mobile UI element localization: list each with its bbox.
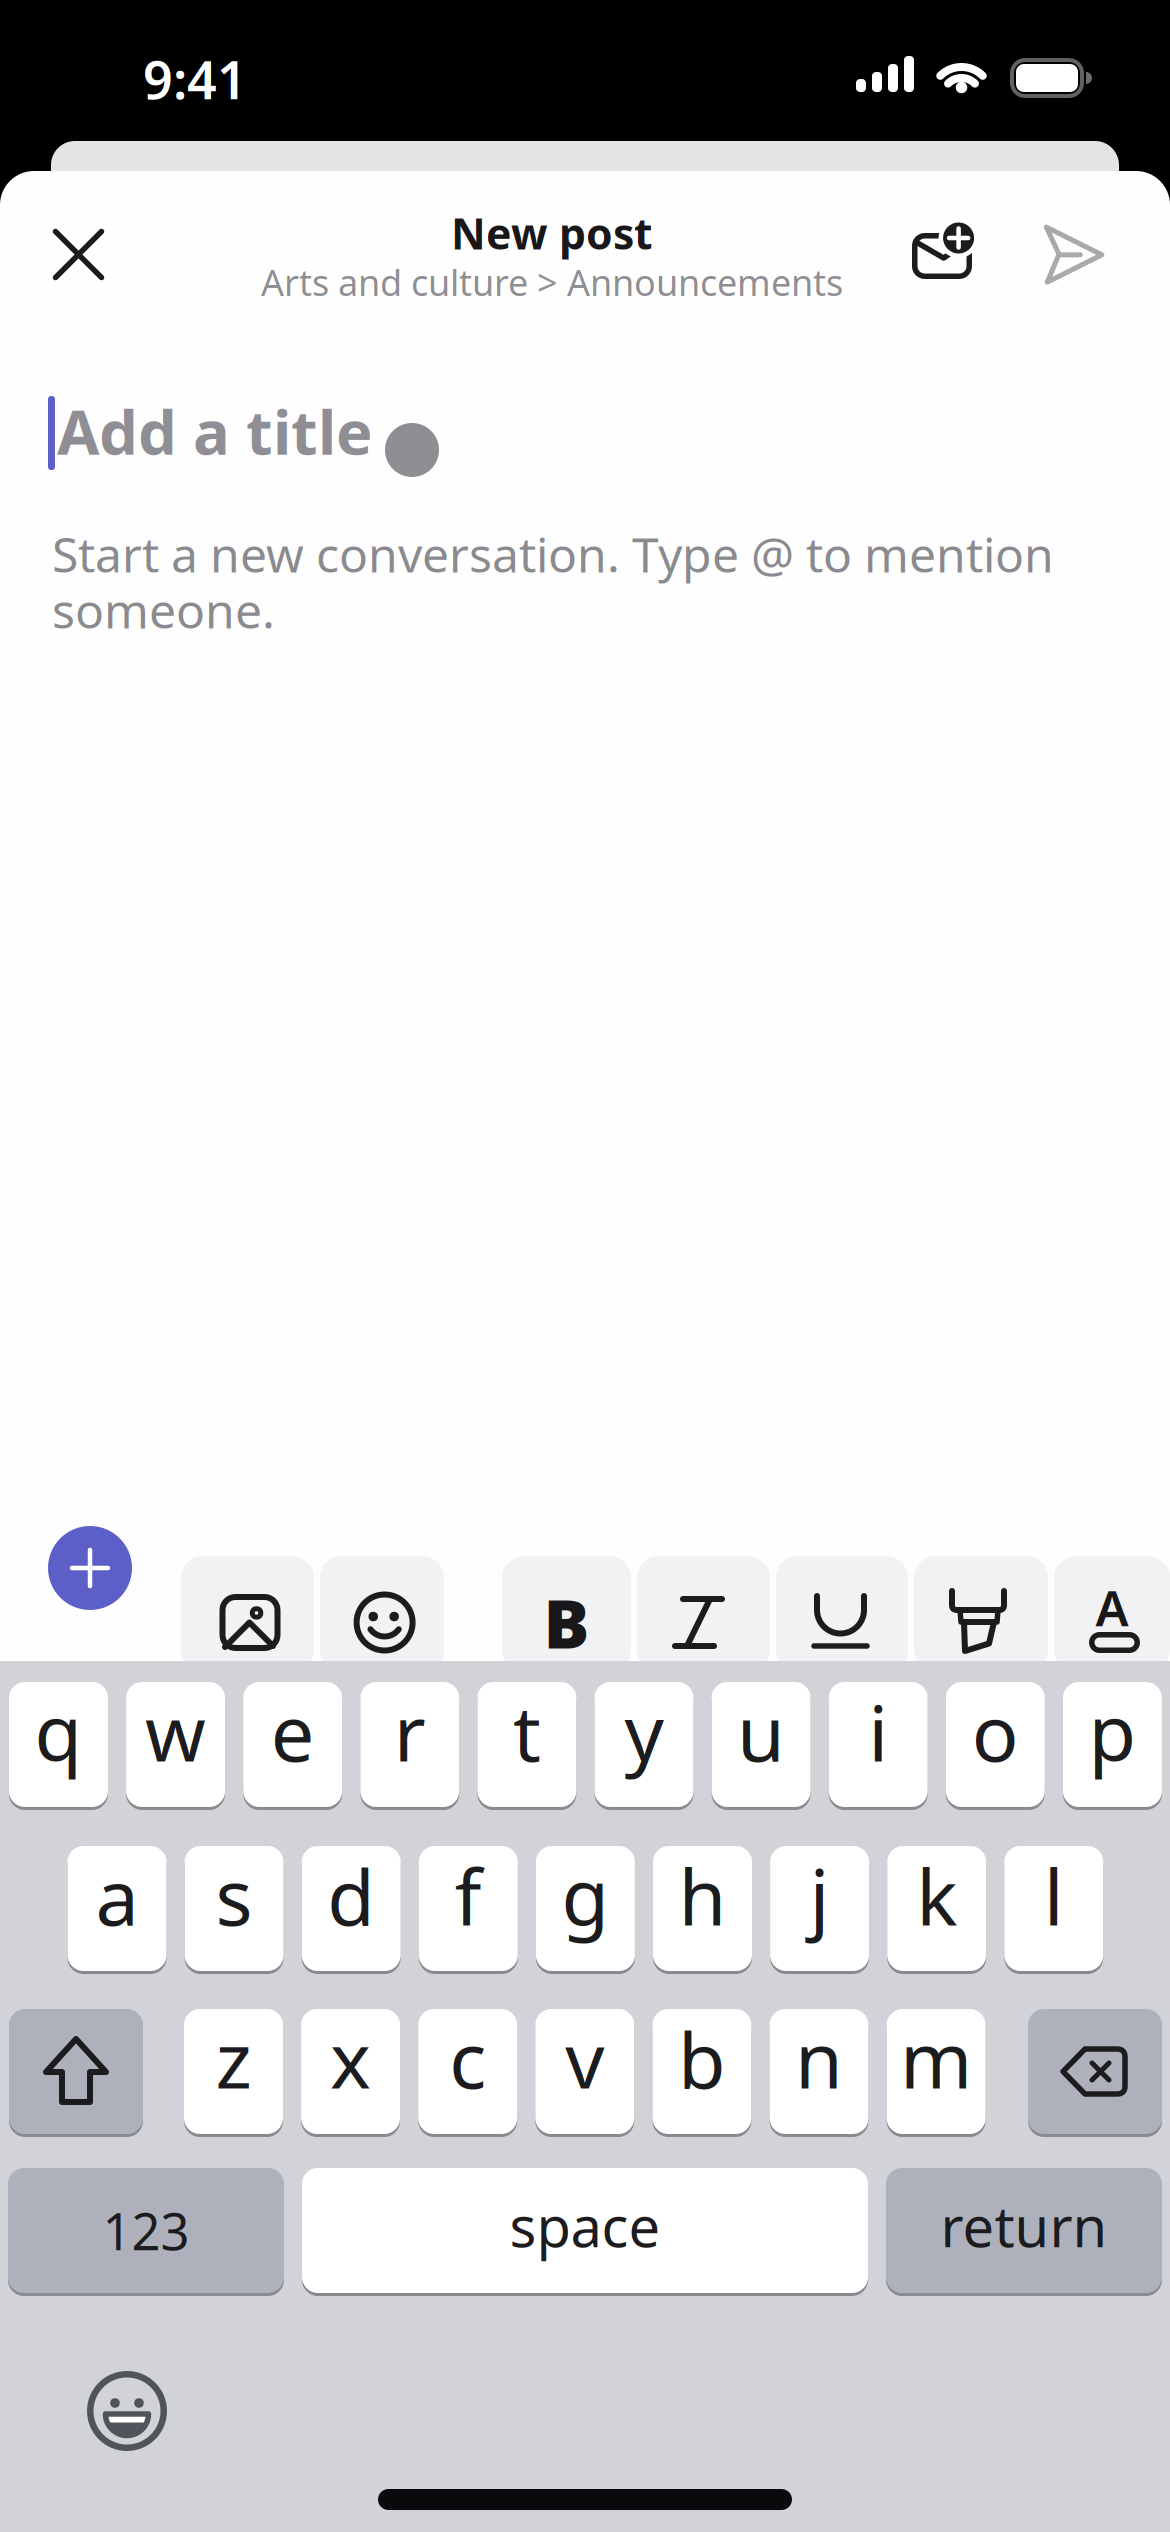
button[interactable] xyxy=(48,1526,132,1610)
staticText: l xyxy=(1044,1844,1064,1947)
staticText: q xyxy=(34,1680,82,1783)
staticText: Start a new conversation. Type @ to ment… xyxy=(52,522,1054,586)
button[interactable] xyxy=(914,1556,1048,1672)
button[interactable]: q xyxy=(9,1682,108,1807)
button[interactable]: m xyxy=(887,2009,986,2134)
button[interactable] xyxy=(637,1556,770,1672)
staticText: d xyxy=(327,1844,375,1947)
staticText: n xyxy=(795,2007,843,2110)
staticText: Add a title xyxy=(57,390,373,472)
button[interactable]: h xyxy=(653,1846,752,1971)
button[interactable]: d xyxy=(302,1846,401,1971)
staticText: New post xyxy=(451,205,653,261)
staticText: p xyxy=(1088,1680,1136,1783)
button[interactable] xyxy=(906,216,980,286)
staticText: 9:41 xyxy=(143,44,247,114)
button[interactable] xyxy=(1028,2009,1162,2134)
button[interactable]: g xyxy=(536,1846,635,1971)
button[interactable]: v xyxy=(535,2009,634,2134)
staticText: o xyxy=(972,1680,1019,1783)
button[interactable]: A xyxy=(1054,1556,1170,1672)
button[interactable]: x xyxy=(301,2009,400,2134)
staticText: t xyxy=(513,1680,541,1783)
button[interactable] xyxy=(46,222,110,286)
button[interactable]: y xyxy=(594,1682,693,1807)
button[interactable]: z xyxy=(184,2009,283,2134)
button[interactable]: e xyxy=(243,1682,342,1807)
staticText: z xyxy=(215,2007,251,2110)
button[interactable]: i xyxy=(829,1682,928,1807)
staticText: c xyxy=(449,2007,486,2110)
staticText: w xyxy=(145,1680,206,1783)
staticText: v xyxy=(565,2007,604,2110)
button[interactable]: a xyxy=(67,1846,166,1971)
button[interactable]: return xyxy=(886,2168,1162,2293)
button[interactable]: space xyxy=(302,2168,868,2293)
staticText: k xyxy=(916,1844,957,1947)
staticText: someone. xyxy=(52,578,275,642)
staticText: f xyxy=(455,1844,482,1947)
button[interactable] xyxy=(320,1556,444,1672)
staticText: g xyxy=(561,1844,609,1947)
staticText: return xyxy=(940,2188,1107,2263)
button[interactable] xyxy=(776,1556,908,1672)
button[interactable] xyxy=(1032,213,1116,297)
button[interactable]: b xyxy=(652,2009,751,2134)
staticText: Arts and culture > Announcements xyxy=(261,258,843,306)
button[interactable]: p xyxy=(1063,1682,1162,1807)
button[interactable]: t xyxy=(477,1682,576,1807)
button[interactable]: c xyxy=(418,2009,517,2134)
staticText: h xyxy=(678,1844,726,1947)
button[interactable]: u xyxy=(712,1682,811,1807)
staticText: B xyxy=(543,1577,589,1667)
button[interactable]: k xyxy=(887,1846,986,1971)
staticText: r xyxy=(394,1680,426,1783)
staticText: s xyxy=(216,1844,253,1947)
button[interactable]: r xyxy=(360,1682,459,1807)
staticText: y xyxy=(624,1680,663,1783)
staticText: A xyxy=(1095,1574,1128,1640)
staticText: a xyxy=(95,1844,138,1947)
staticText: x xyxy=(330,2007,371,2110)
button[interactable]: n xyxy=(769,2009,868,2134)
staticText: u xyxy=(737,1680,785,1783)
button[interactable]: l xyxy=(1004,1846,1103,1971)
button[interactable]: j xyxy=(770,1846,869,1971)
staticText: m xyxy=(900,2007,972,2110)
button[interactable]: s xyxy=(185,1846,284,1971)
button[interactable]: o xyxy=(946,1682,1045,1807)
button[interactable]: 123 xyxy=(8,2168,284,2293)
button[interactable] xyxy=(79,2363,175,2459)
staticText: space xyxy=(509,2188,660,2263)
staticText: e xyxy=(271,1680,315,1783)
button[interactable] xyxy=(181,1556,314,1672)
staticText: 123 xyxy=(102,2197,189,2264)
button[interactable] xyxy=(9,2009,143,2134)
button[interactable]: w xyxy=(126,1682,225,1807)
staticText: i xyxy=(868,1680,888,1783)
staticText: b xyxy=(678,2007,726,2110)
button[interactable]: f xyxy=(419,1846,518,1971)
staticText: j xyxy=(810,1844,830,1947)
button[interactable]: B xyxy=(502,1556,631,1672)
